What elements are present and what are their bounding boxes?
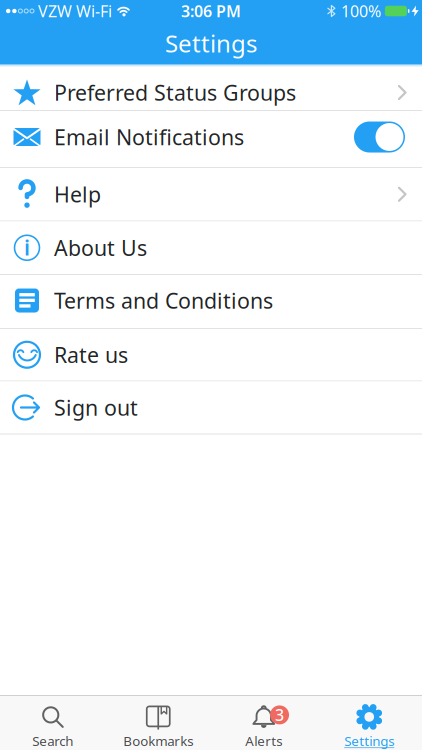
button[interactable]: 3 [211, 696, 316, 750]
button[interactable]: Email Notifications [354, 121, 405, 152]
staticText: About Us [54, 234, 147, 262]
staticText: Preferred Status Groups [54, 78, 296, 107]
staticText: Email Notifications [54, 123, 244, 151]
button[interactable]: Preferred Status Groups [0, 67, 422, 111]
staticText: Sign out [54, 393, 138, 422]
button[interactable]: Settings [316, 696, 422, 750]
button[interactable]: Terms and Conditions [0, 275, 422, 329]
staticText: VZW Wi-Fi [38, 0, 112, 22]
button[interactable]: Sign out [0, 381, 422, 434]
staticText: Bookmarks [123, 732, 193, 750]
button[interactable]: Search [0, 696, 105, 750]
staticText: Settings [344, 732, 394, 750]
button[interactable]: i [0, 221, 422, 275]
staticText: 100% [341, 0, 381, 22]
button[interactable]: Help [0, 168, 422, 221]
staticText: Search [32, 732, 73, 750]
staticText: Terms and Conditions [54, 286, 273, 315]
button[interactable]: Bookmarks [105, 696, 211, 750]
staticText: Alerts [245, 732, 282, 750]
staticText: Rate us [54, 341, 128, 369]
staticText: Help [54, 180, 101, 208]
staticText: 3 [275, 704, 284, 725]
button[interactable]: Rate us [0, 329, 422, 381]
staticText: 3:06 PM [181, 0, 241, 22]
staticText: Settings [165, 27, 257, 59]
staticText: i [24, 233, 30, 261]
